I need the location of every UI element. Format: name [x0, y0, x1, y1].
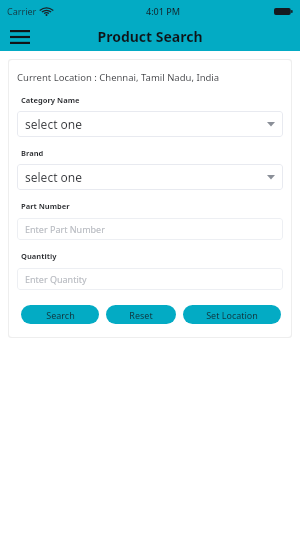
staticText: 4:01 PM: [146, 5, 180, 17]
staticText: Brand: [21, 148, 44, 158]
staticText: Quantitiy: [21, 251, 57, 261]
button[interactable]: Search: [21, 305, 99, 324]
staticText: Set Location: [206, 309, 258, 321]
staticText: Current Location : Chennai, Tamil Nadu, …: [17, 71, 220, 84]
staticText: Carrier: [7, 5, 37, 17]
staticText: Category Name: [21, 95, 80, 105]
staticText: select one: [25, 169, 83, 185]
button[interactable]: Reset: [106, 305, 176, 324]
button[interactable]: Open navigation menu: [3, 22, 37, 51]
button[interactable]: select one: [17, 164, 283, 190]
button[interactable]: Enter Quantity: [17, 268, 283, 290]
button[interactable]: Set Location: [183, 305, 281, 324]
staticText: select one: [25, 116, 83, 132]
staticText: Part Number: [21, 201, 70, 211]
button[interactable]: select one: [17, 111, 283, 137]
button[interactable]: Enter Part Number: [17, 218, 283, 240]
staticText: Enter Quantity: [25, 273, 87, 285]
staticText: Search: [46, 309, 75, 321]
staticText: Reset: [129, 309, 153, 321]
staticText: Enter Part Number: [25, 223, 105, 235]
staticText: Product Search: [97, 27, 203, 46]
